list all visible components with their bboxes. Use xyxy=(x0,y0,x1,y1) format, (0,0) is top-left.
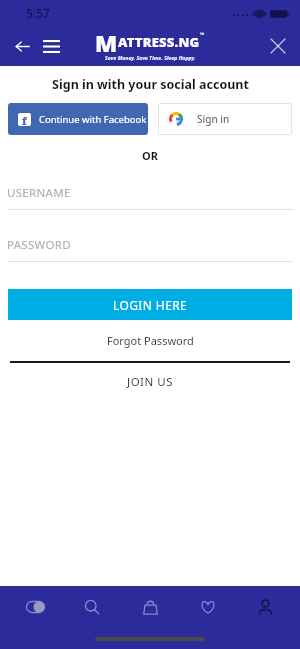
staticText: M xyxy=(95,27,118,58)
button[interactable]: JOIN US xyxy=(113,371,187,393)
button[interactable]: Theme toggle xyxy=(12,587,58,627)
button[interactable]: Menu xyxy=(36,31,66,61)
button[interactable]: USERNAME xyxy=(0,185,300,210)
staticText: OR xyxy=(142,148,158,163)
staticText: Sign in xyxy=(197,112,230,126)
staticText: Forgot Password xyxy=(107,333,194,348)
staticText: PASSWORD xyxy=(7,237,71,253)
staticText: ™ xyxy=(200,31,205,39)
staticText: Save Money. Save Time. Sleep Happy. xyxy=(105,55,196,62)
staticText: LOGIN HERE xyxy=(113,297,188,313)
button[interactable]: Close xyxy=(264,32,292,60)
button[interactable]: Sign in xyxy=(158,103,292,135)
button[interactable]: Back xyxy=(8,32,36,60)
staticText: f xyxy=(22,113,27,126)
staticText: USERNAME xyxy=(7,185,71,201)
button[interactable]: Cart xyxy=(127,587,173,627)
button[interactable]: Account xyxy=(242,587,288,627)
button[interactable]: Search xyxy=(69,587,115,627)
staticText: JOIN US xyxy=(127,374,173,390)
button[interactable]: Wishlist xyxy=(185,587,231,627)
staticText: 5:57 xyxy=(26,5,50,21)
button[interactable]: PASSWORD xyxy=(0,237,300,262)
button[interactable]: Forgot Password xyxy=(95,330,206,351)
staticText: Continue with Facebook xyxy=(39,113,147,126)
button[interactable]: LOGIN HERE xyxy=(8,289,292,320)
button[interactable]: f xyxy=(8,103,148,135)
staticText: ATTRESS.NG xyxy=(118,33,200,51)
staticText: Sign in with your social account xyxy=(52,76,249,93)
